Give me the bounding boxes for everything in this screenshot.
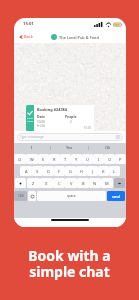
- button[interactable]: A: [20, 166, 32, 176]
- staticText: Book with a simple chat: [28, 246, 111, 281]
- button[interactable]: Z: [27, 178, 40, 188]
- button[interactable]: Ok: [89, 143, 126, 152]
- staticText: Q: [18, 157, 22, 162]
- button[interactable]: M: [101, 178, 113, 188]
- staticText: Yes: [66, 145, 73, 150]
- button[interactable]: V: [65, 178, 77, 188]
- staticText: J: [92, 169, 94, 174]
- button[interactable]: The Local Pub & Food: [51, 34, 99, 40]
- staticText: V: [70, 181, 73, 186]
- button[interactable]: Type a message: [17, 133, 123, 141]
- button[interactable]: L: [109, 166, 120, 176]
- staticText: send: [112, 194, 120, 199]
- staticText: L: [113, 169, 116, 174]
- other: Attach: [116, 135, 120, 139]
- button[interactable]: space: [37, 191, 106, 201]
- staticText: D: [47, 169, 50, 174]
- button[interactable]: T: [60, 154, 71, 164]
- button[interactable]: G: [65, 166, 76, 176]
- button[interactable]: K: [98, 166, 109, 176]
- staticText: I: [31, 145, 33, 150]
- staticText: People: [65, 114, 77, 119]
- staticText: X: [45, 181, 48, 186]
- button[interactable]: N: [89, 178, 101, 188]
- button[interactable]: Y: [71, 154, 82, 164]
- button[interactable]: J: [87, 166, 98, 176]
- staticText: 15:01: [23, 21, 34, 27]
- staticText: H: [80, 169, 83, 174]
- staticText: P: [119, 157, 122, 162]
- button[interactable]: Shift: [15, 178, 26, 188]
- staticText: 15:01: [84, 126, 92, 130]
- button[interactable]: Booking #24384: [26, 105, 94, 131]
- staticText: Date: [37, 114, 46, 119]
- staticText: 2: [70, 120, 72, 124]
- button[interactable]: X: [40, 178, 53, 188]
- button[interactable]: Back: [18, 32, 34, 41]
- staticText: R: [53, 157, 56, 162]
- button[interactable]: I: [14, 143, 50, 152]
- staticText: A: [25, 169, 28, 174]
- staticText: Ok: [105, 145, 111, 150]
- staticText: The Local Pub & Food: [59, 35, 99, 40]
- button[interactable]: O: [104, 154, 115, 164]
- button[interactable]: Yes: [51, 143, 88, 152]
- button[interactable]: S: [32, 166, 43, 176]
- button[interactable]: Emoji: [28, 191, 36, 201]
- button[interactable]: W: [26, 154, 38, 164]
- button[interactable]: U: [82, 154, 93, 164]
- staticText: C: [58, 181, 61, 186]
- button[interactable]: C: [53, 178, 65, 188]
- staticText: I: [98, 157, 100, 162]
- button[interactable]: E: [38, 154, 49, 164]
- staticText: U: [86, 157, 89, 162]
- button[interactable]: Delete: [114, 178, 125, 188]
- staticText: O: [108, 157, 112, 162]
- staticText: N: [93, 181, 97, 186]
- button[interactable]: H: [76, 166, 87, 176]
- staticText: S: [36, 169, 39, 174]
- staticText: W: [30, 157, 34, 162]
- button[interactable]: I: [93, 154, 104, 164]
- staticText: space: [67, 194, 76, 198]
- button[interactable]: D: [43, 166, 54, 176]
- staticText: G: [69, 169, 72, 174]
- staticText: B: [82, 181, 85, 186]
- staticText: T: [64, 157, 67, 162]
- button[interactable]: 123: [14, 191, 27, 201]
- staticText: M: [105, 181, 109, 186]
- staticText: Z: [32, 181, 35, 186]
- staticText: Y: [75, 157, 78, 162]
- staticText: K: [102, 169, 105, 174]
- button[interactable]: R: [49, 154, 60, 164]
- staticText: Type a message: [20, 135, 44, 139]
- staticText: Fri 24: [37, 124, 45, 128]
- button[interactable]: F: [54, 166, 65, 176]
- button[interactable]: P: [115, 154, 126, 164]
- staticText: F: [58, 169, 61, 174]
- staticText: 10:30: [37, 120, 45, 124]
- button[interactable]: Q: [14, 154, 26, 164]
- staticText: Booking #24384: [37, 107, 67, 112]
- staticText: 123: [18, 194, 24, 198]
- button[interactable]: B: [77, 178, 89, 188]
- staticText: Back: [24, 34, 33, 39]
- staticText: E: [42, 157, 45, 162]
- button[interactable]: send: [107, 191, 125, 201]
